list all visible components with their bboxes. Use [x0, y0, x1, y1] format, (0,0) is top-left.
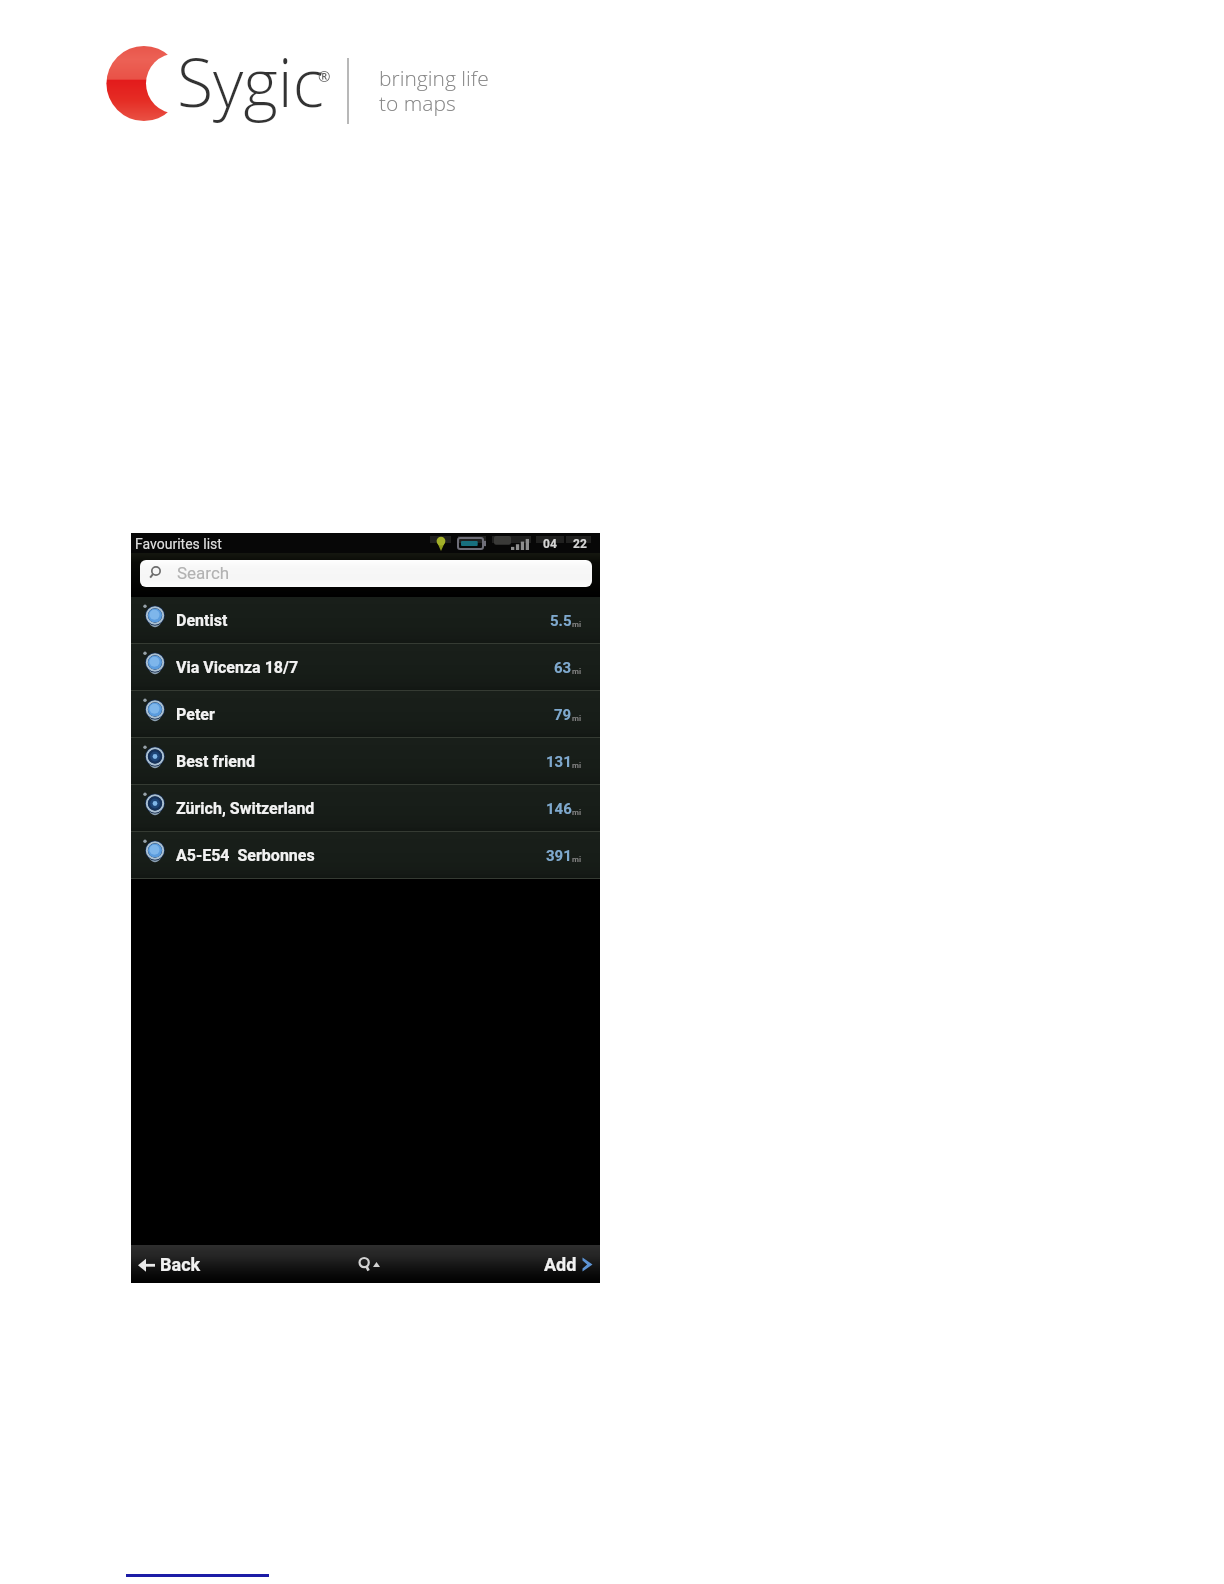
staticText: 79	[554, 706, 572, 724]
staticText: Add	[544, 1254, 577, 1275]
staticText: Favourites list	[135, 536, 222, 552]
staticText: mi	[572, 855, 582, 864]
staticText: Peter	[176, 705, 215, 724]
staticText: A5-E54 Serbonnes	[176, 846, 315, 865]
staticText: 131	[546, 753, 572, 771]
staticText: Dentist	[176, 611, 228, 630]
button[interactable]: Add	[530, 1247, 600, 1282]
button[interactable]: A5-E54 Serbonnes	[131, 832, 600, 879]
staticText: 5.5	[550, 612, 572, 630]
staticText: mi	[572, 714, 582, 723]
staticText: Search	[177, 563, 230, 583]
staticText: mi	[572, 808, 582, 817]
button[interactable]: Zürich, Switzerland	[131, 785, 600, 832]
button[interactable]: Best friend	[131, 738, 600, 785]
staticText: Via Vicenza 18/7	[176, 658, 299, 677]
staticText: Zürich, Switzerland	[176, 799, 315, 818]
staticText: mi	[572, 620, 582, 629]
staticText: 146	[546, 800, 572, 818]
staticText: Sygic	[177, 36, 325, 126]
button[interactable]: Dentist	[131, 597, 600, 644]
button[interactable]: Back	[131, 1247, 215, 1282]
staticText: 22	[573, 537, 587, 551]
staticText: Best friend	[176, 752, 255, 771]
staticText: mi	[572, 761, 582, 770]
staticText: 04	[543, 537, 557, 551]
button[interactable]: Peter	[131, 691, 600, 738]
button[interactable]: Search	[140, 560, 592, 587]
staticText: ®	[318, 66, 331, 86]
staticText: 63	[554, 659, 572, 677]
button[interactable]: Via Vicenza 18/7	[131, 644, 600, 691]
staticText: bringing life	[379, 64, 489, 93]
staticText: Back	[160, 1254, 201, 1275]
staticText: to maps	[379, 89, 456, 118]
staticText: mi	[572, 667, 582, 676]
staticText: 391	[546, 847, 572, 865]
button[interactable]: Search options	[348, 1249, 390, 1279]
